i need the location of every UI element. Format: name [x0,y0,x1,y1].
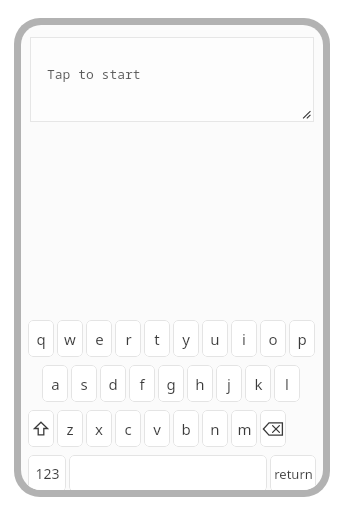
button[interactable]: g [158,365,184,402]
button[interactable]: b [173,410,199,447]
button[interactable]: d [100,365,126,402]
staticText: q [36,329,46,349]
staticText: 123 [35,464,60,483]
staticText: b [181,419,191,439]
button[interactable]: c [115,410,141,447]
button[interactable]: y [173,320,199,357]
staticText: f [139,374,145,394]
staticText: y [182,329,190,349]
button[interactable]: Shift [28,410,54,447]
staticText: d [108,374,118,394]
staticText: k [254,374,263,394]
button[interactable]: r [115,320,141,357]
staticText: u [210,329,220,349]
staticText: w [64,329,76,349]
button[interactable]: f [129,365,155,402]
button[interactable]: Tap to start [30,37,314,122]
button[interactable]: Space [69,455,267,490]
staticText: o [268,329,278,349]
button[interactable]: e [86,320,112,357]
staticText: j [227,374,231,394]
button[interactable]: x [86,410,112,447]
staticText: return [274,465,313,483]
staticText: h [195,374,205,394]
staticText: a [51,374,60,394]
button[interactable]: p [289,320,315,357]
button[interactable]: return [270,455,316,490]
staticText: e [95,329,104,349]
staticText: n [210,419,220,439]
button[interactable]: 123 [28,455,66,490]
button[interactable]: s [71,365,97,402]
button[interactable]: i [231,320,257,357]
button[interactable]: j [216,365,242,402]
button[interactable]: a [42,365,68,402]
staticText: p [297,329,307,349]
button[interactable]: v [144,410,170,447]
button[interactable]: m [231,410,257,447]
staticText: l [285,374,289,394]
staticText: m [237,419,252,439]
button[interactable]: q [28,320,54,357]
staticText: s [80,374,88,394]
staticText: c [124,419,132,439]
staticText: t [154,329,160,349]
button[interactable]: z [57,410,83,447]
staticText: z [66,419,74,439]
staticText: Tap to start [47,65,141,83]
button[interactable]: o [260,320,286,357]
button[interactable]: l [274,365,300,402]
button[interactable]: t [144,320,170,357]
staticText: x [95,419,103,439]
button[interactable]: u [202,320,228,357]
staticText: i [242,329,246,349]
button[interactable]: h [187,365,213,402]
staticText: r [125,329,132,349]
button[interactable]: n [202,410,228,447]
button[interactable]: w [57,320,83,357]
button[interactable]: Backspace [260,410,286,447]
button[interactable]: k [245,365,271,402]
staticText: g [166,374,176,394]
staticText: v [153,419,161,439]
